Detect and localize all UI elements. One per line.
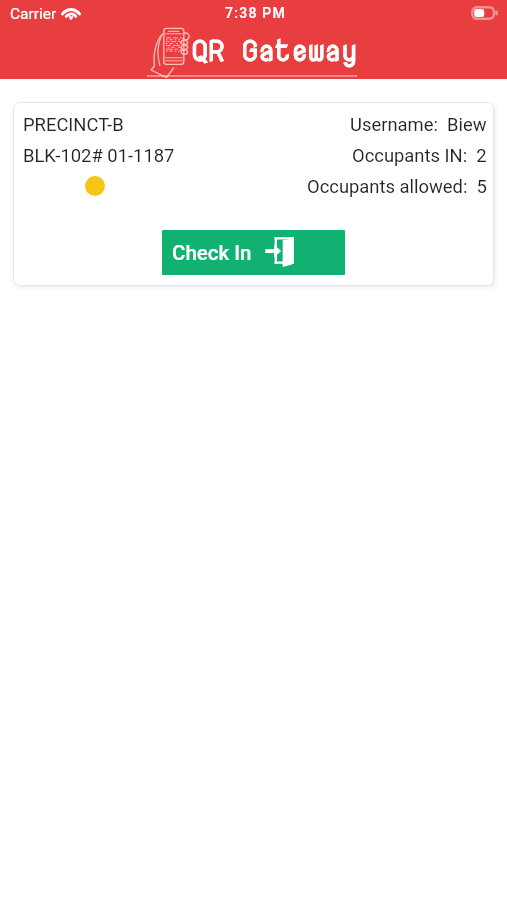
staticText: Occupants allowed: 5	[307, 176, 487, 198]
staticText: 7:38 PM	[225, 5, 287, 21]
staticText: BLK-102# 01-1187	[23, 145, 175, 167]
staticText: QR Gateway	[192, 29, 358, 70]
staticText: Check In	[172, 241, 252, 265]
staticText: Username: Biew	[350, 114, 487, 136]
button[interactable]: Check In	[162, 230, 345, 275]
staticText: Occupants IN: 2	[352, 145, 487, 167]
staticText: PRECINCT-B	[23, 114, 124, 136]
staticText: QR Gateway	[192, 29, 358, 70]
staticText: Carrier	[10, 5, 57, 23]
